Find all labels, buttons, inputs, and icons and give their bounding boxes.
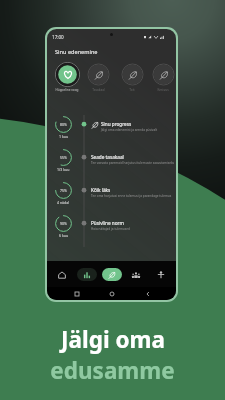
staticText: 1/3 kuu [57, 167, 70, 172]
staticText: Hüppeline voog [55, 88, 79, 92]
staticText: 17:00 [52, 34, 64, 40]
button[interactable]: Hüppeline voog [53, 62, 81, 92]
staticText: 80% [60, 122, 67, 127]
staticText: Jälgi oma edenemist ja arenda püsivalt [101, 128, 158, 132]
staticText: 90% [60, 221, 67, 226]
staticText: Kõik läks [91, 187, 111, 193]
staticText: edusamme [50, 355, 175, 386]
staticText: 75% [60, 188, 67, 193]
staticText: 6 kuu [59, 233, 69, 238]
staticText: 55% [60, 155, 67, 160]
button[interactable]: Profile [151, 268, 171, 281]
button[interactable]: Kestvus [149, 62, 176, 92]
staticText: Tee oma harjutusi enne tulemusi ja paran… [91, 194, 172, 198]
staticText: Sinu progress [101, 121, 132, 127]
staticText: Sinu edenemine [55, 48, 98, 56]
staticText: Seade tasakaal [91, 154, 124, 160]
staticText: 4 nädal [57, 200, 70, 205]
button[interactable]: Community [126, 268, 146, 281]
button[interactable]: Back [141, 287, 154, 300]
button[interactable]: Statistics [77, 268, 97, 281]
button[interactable]: 90% [47, 214, 176, 247]
button[interactable]: 80% [47, 115, 176, 148]
staticText: Kestvus [157, 88, 169, 92]
button[interactable]: 75% [47, 181, 176, 214]
staticText: Püsivline norm [91, 220, 124, 226]
button[interactable]: Toit [118, 62, 146, 92]
button[interactable]: Home [52, 268, 72, 281]
button[interactable]: Recents [70, 287, 83, 300]
staticText: Tasakaal [92, 88, 105, 92]
staticText: Hoia näitajad ja tulemused [91, 227, 130, 231]
button[interactable]: Tasakaal [84, 62, 112, 92]
button[interactable]: Nutrition [102, 268, 122, 281]
staticText: Toit [129, 88, 135, 92]
button[interactable]: 55% [47, 148, 176, 181]
button[interactable]: Home [105, 287, 118, 300]
staticText: 1 kuu [59, 134, 69, 139]
staticText: Jälgi oma [61, 324, 165, 355]
staticText: Tee vaevata paremaid harjutusi tulemuste… [91, 161, 175, 165]
